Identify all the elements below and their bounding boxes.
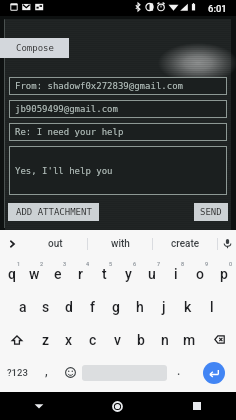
button[interactable]: f bbox=[80, 290, 104, 323]
staticText: ?123 bbox=[7, 367, 28, 378]
button[interactable]: with bbox=[88, 230, 152, 257]
staticText: 8 bbox=[181, 261, 185, 267]
staticText: create bbox=[171, 238, 200, 250]
staticText: l bbox=[210, 299, 214, 315]
button[interactable]: a bbox=[11, 290, 34, 323]
button[interactable]: , bbox=[34, 356, 58, 389]
staticText: f bbox=[90, 299, 95, 315]
button[interactable]: h bbox=[128, 290, 152, 323]
staticText: 6 bbox=[133, 261, 137, 267]
button[interactable]: w bbox=[23, 257, 46, 290]
button[interactable]: e bbox=[46, 257, 69, 290]
button[interactable]: d bbox=[57, 290, 80, 323]
staticText: v bbox=[114, 332, 121, 348]
staticText: a bbox=[19, 299, 27, 315]
staticText: t bbox=[102, 266, 107, 282]
staticText: 6:01 bbox=[208, 3, 227, 14]
button[interactable]: b bbox=[129, 323, 153, 356]
button[interactable]: Back bbox=[0, 392, 78, 420]
button[interactable]: o bbox=[188, 257, 212, 290]
staticText: d bbox=[65, 299, 73, 315]
staticText: j bbox=[162, 299, 166, 315]
staticText: q bbox=[8, 266, 16, 282]
button[interactable]: out bbox=[23, 230, 87, 257]
staticText: o bbox=[196, 266, 204, 282]
button[interactable]: g bbox=[104, 290, 128, 323]
button[interactable]: u bbox=[140, 257, 164, 290]
button[interactable]: j bbox=[152, 290, 176, 323]
button[interactable]: r bbox=[69, 257, 92, 290]
staticText: 5 bbox=[109, 261, 113, 267]
staticText: g bbox=[112, 299, 120, 315]
staticText: p bbox=[220, 266, 228, 282]
button[interactable]: Yes, I'll help you bbox=[9, 146, 227, 195]
staticText: 2 bbox=[40, 261, 44, 267]
staticText: , bbox=[45, 364, 48, 378]
button[interactable]: Emoji bbox=[58, 356, 82, 389]
staticText: jb9059499@gmail.com bbox=[15, 104, 118, 114]
staticText: ADD ATTACHMENT bbox=[16, 207, 92, 217]
button[interactable]: s bbox=[34, 290, 57, 323]
button[interactable]: From: shadowf0x272839@gmail.com bbox=[9, 77, 227, 95]
button[interactable]: z bbox=[34, 323, 57, 356]
staticText: 4 bbox=[86, 261, 90, 267]
staticText: c bbox=[89, 332, 97, 348]
staticText: with bbox=[111, 238, 130, 250]
staticText: SEND bbox=[200, 207, 222, 217]
button[interactable]: p bbox=[212, 257, 236, 290]
button[interactable]: ADD ATTACHMENT bbox=[8, 203, 99, 221]
staticText: 3 bbox=[63, 261, 67, 267]
button[interactable]: y bbox=[116, 257, 140, 290]
button[interactable]: . bbox=[167, 356, 191, 389]
staticText: b bbox=[137, 332, 145, 348]
staticText: From: shadowf0x272839@gmail.com bbox=[15, 81, 183, 91]
staticText: out bbox=[48, 238, 63, 250]
staticText: Re: I need your help bbox=[15, 127, 124, 137]
button[interactable]: Re: I need your help bbox=[9, 123, 227, 141]
button[interactable]: ?123 bbox=[0, 356, 34, 389]
button[interactable]: More suggestions bbox=[0, 230, 23, 257]
staticText: z bbox=[42, 332, 50, 348]
button[interactable]: n bbox=[153, 323, 177, 356]
staticText: 0 bbox=[229, 261, 233, 267]
staticText: 9 bbox=[205, 261, 209, 267]
button[interactable]: t bbox=[92, 257, 116, 290]
staticText: y bbox=[125, 266, 132, 282]
button[interactable]: create bbox=[153, 230, 217, 257]
button[interactable]: SEND bbox=[194, 203, 228, 221]
button[interactable]: jb9059499@gmail.com bbox=[9, 100, 227, 118]
button[interactable]: Compose bbox=[0, 38, 69, 58]
staticText: e bbox=[54, 266, 62, 282]
staticText: s bbox=[42, 299, 50, 315]
button[interactable]: Backspace bbox=[201, 323, 236, 356]
button[interactable]: q bbox=[0, 257, 23, 290]
staticText: w bbox=[29, 266, 40, 282]
staticText: Yes, I'll help you bbox=[15, 166, 113, 176]
staticText: . bbox=[177, 364, 181, 378]
button[interactable]: Recents bbox=[157, 392, 236, 420]
staticText: 1 bbox=[17, 261, 21, 267]
button[interactable]: Enter bbox=[203, 362, 225, 384]
staticText: k bbox=[184, 299, 192, 315]
staticText: r bbox=[78, 266, 83, 282]
button[interactable]: Voice input bbox=[218, 230, 236, 257]
staticText: n bbox=[161, 332, 169, 348]
button[interactable]: m bbox=[177, 323, 201, 356]
staticText: 7 bbox=[157, 261, 161, 267]
staticText: x bbox=[65, 332, 73, 348]
button[interactable]: l bbox=[200, 290, 224, 323]
button[interactable]: i bbox=[164, 257, 188, 290]
staticText: m bbox=[183, 332, 196, 348]
staticText: u bbox=[148, 266, 156, 282]
button[interactable]: v bbox=[105, 323, 129, 356]
button[interactable]: Home bbox=[78, 392, 157, 420]
staticText: h bbox=[136, 299, 144, 315]
staticText: i bbox=[174, 266, 178, 282]
button[interactable]: c bbox=[81, 323, 105, 356]
staticText: Compose bbox=[16, 43, 54, 53]
button[interactable]: Shift bbox=[0, 323, 34, 356]
button[interactable]: k bbox=[176, 290, 200, 323]
button[interactable]: x bbox=[57, 323, 81, 356]
